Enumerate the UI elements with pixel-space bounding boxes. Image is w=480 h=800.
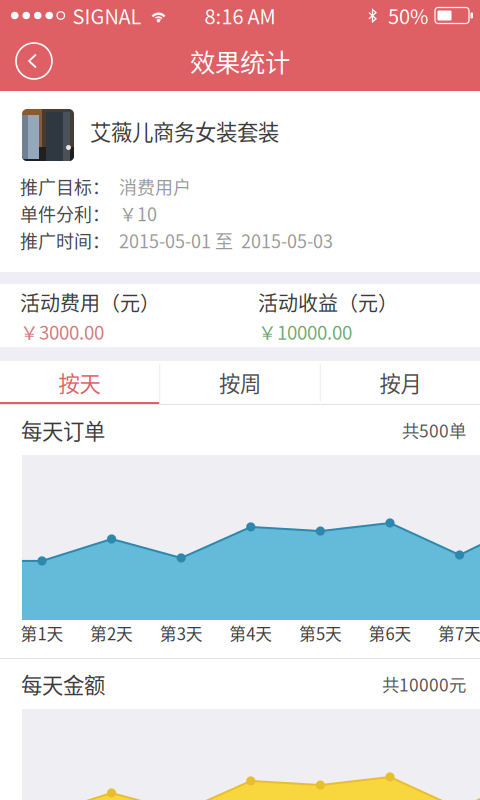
- button[interactable]: 返回: [10, 37, 58, 85]
- staticText: 按周: [219, 367, 261, 398]
- staticText: 第7天: [438, 621, 480, 645]
- staticText: 推广时间：: [20, 227, 110, 254]
- staticText: 单件分利：: [20, 200, 110, 227]
- button[interactable]: 按周: [160, 361, 320, 404]
- staticText: 活动费用（元）: [20, 287, 160, 316]
- staticText: 第4天: [229, 621, 272, 645]
- staticText: 效果统计: [190, 43, 290, 79]
- button[interactable]: 按天: [0, 361, 159, 404]
- staticText: 消费用户: [119, 173, 191, 200]
- staticText: 按天: [58, 367, 100, 398]
- staticText: 第6天: [368, 621, 411, 645]
- staticText: 共10000元: [382, 671, 466, 697]
- staticText: 按月: [379, 367, 421, 398]
- staticText: 第1天: [20, 621, 63, 645]
- staticText: 共500单: [402, 417, 466, 443]
- staticText: ￥10000.00: [258, 318, 352, 345]
- staticText: 推广目标：: [20, 173, 110, 200]
- staticText: SIGNAL: [72, 1, 141, 30]
- staticText: ￥3000.00: [20, 318, 104, 345]
- staticText: 2015-05-01 至 2015-05-03: [119, 227, 333, 254]
- staticText: 50%: [388, 1, 428, 30]
- staticText: 每天金额: [21, 669, 105, 699]
- staticText: 8:16 AM: [204, 1, 275, 30]
- staticText: 第3天: [160, 621, 203, 645]
- staticText: 第5天: [299, 621, 342, 645]
- staticText: 第2天: [90, 621, 133, 645]
- staticText: 每天订单: [21, 415, 105, 445]
- staticText: 艾薇儿商务女装套装: [90, 116, 279, 146]
- staticText: 活动收益（元）: [258, 287, 398, 316]
- button[interactable]: 按月: [321, 361, 480, 404]
- staticText: ￥10: [119, 200, 157, 227]
